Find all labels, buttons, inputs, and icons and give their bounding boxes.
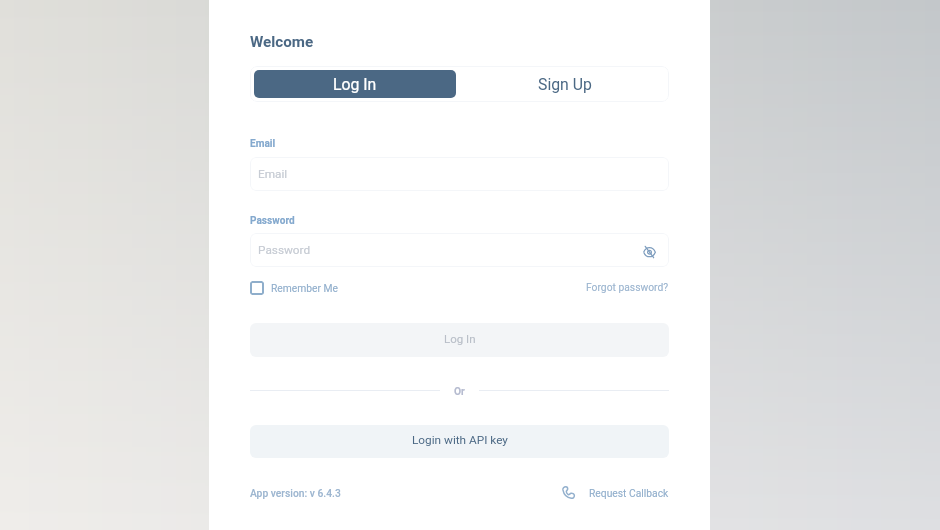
- button[interactable]: Password: [250, 233, 669, 267]
- staticText: Password: [250, 215, 295, 227]
- button[interactable]: Show password: [640, 241, 658, 259]
- staticText: Welcome: [250, 33, 314, 51]
- staticText: Email: [250, 138, 276, 150]
- button[interactable]: Request Callback: [562, 486, 669, 499]
- staticText: Forgot password?: [586, 281, 669, 293]
- staticText: Login with API key: [412, 433, 508, 447]
- staticText: App version: v 6.4.3: [250, 487, 341, 499]
- staticText: Email: [258, 167, 288, 181]
- button[interactable]: Email: [250, 157, 669, 191]
- staticText: Remember Me: [271, 282, 339, 294]
- staticText: Log In: [444, 332, 476, 345]
- staticText: Request Callback: [589, 487, 669, 499]
- button[interactable]: Remember Me: [250, 281, 339, 295]
- staticText: Password: [258, 243, 311, 257]
- staticText: Log In: [333, 75, 377, 94]
- button[interactable]: Log In: [250, 323, 669, 357]
- staticText: Or: [454, 385, 465, 397]
- button[interactable]: Log In: [254, 70, 456, 98]
- button[interactable]: Login with API key: [250, 425, 669, 458]
- button[interactable]: Forgot password?: [250, 281, 669, 293]
- staticText: Sign Up: [538, 75, 592, 94]
- button[interactable]: Sign Up: [460, 66, 669, 102]
